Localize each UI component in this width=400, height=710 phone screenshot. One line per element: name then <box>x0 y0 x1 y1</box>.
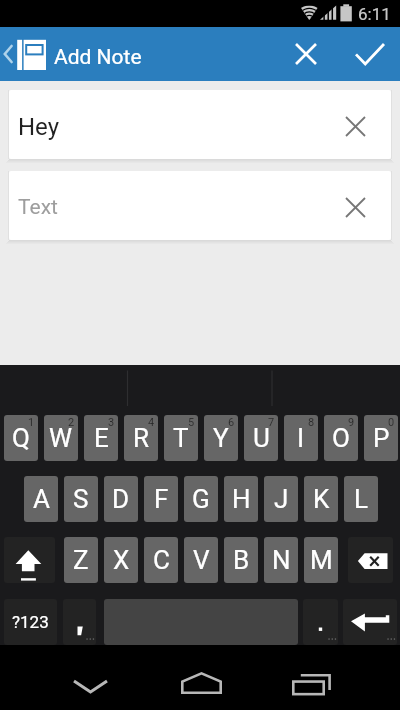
button[interactable]: Y <box>204 415 238 461</box>
button[interactable]: Comma <box>63 599 96 645</box>
button[interactable]: Hey <box>9 90 391 159</box>
staticText: 1 <box>28 416 35 429</box>
button[interactable]: O <box>324 415 358 461</box>
button[interactable]: S <box>64 476 98 522</box>
staticText: V <box>193 545 210 575</box>
staticText: U <box>253 423 270 453</box>
button[interactable]: N <box>264 537 298 583</box>
staticText: R <box>133 423 150 453</box>
staticText: 4 <box>148 416 155 429</box>
staticText: 5 <box>188 416 195 429</box>
staticText: 2 <box>68 416 75 429</box>
button[interactable]: K <box>304 476 338 522</box>
staticText: L <box>354 484 369 514</box>
button[interactable]: Text <box>9 171 391 240</box>
staticText: B <box>233 545 250 575</box>
button[interactable]: W <box>44 415 78 461</box>
button[interactable]: A <box>24 476 58 522</box>
button[interactable]: T <box>164 415 198 461</box>
staticText: T <box>173 423 189 453</box>
staticText: G <box>192 484 210 514</box>
staticText: H <box>232 484 251 514</box>
button[interactable]: Recent apps <box>266 645 400 710</box>
button[interactable]: Discard <box>282 27 330 81</box>
button[interactable]: Hide keyboard <box>0 645 133 710</box>
staticText: J <box>274 484 289 514</box>
button[interactable]: P <box>364 415 398 461</box>
button[interactable]: Clear text <box>328 92 383 159</box>
staticText: O <box>332 423 350 453</box>
button[interactable]: Home <box>133 645 266 710</box>
button[interactable]: G <box>184 476 218 522</box>
staticText: D <box>112 484 130 514</box>
button[interactable]: I <box>284 415 318 461</box>
staticText: Hey <box>18 113 60 141</box>
staticText: P <box>373 423 390 453</box>
staticText: 3 <box>108 416 115 429</box>
button[interactable]: Shift <box>4 537 55 583</box>
button[interactable]: X <box>104 537 138 583</box>
staticText: K <box>313 484 330 514</box>
staticText: 7 <box>268 416 275 429</box>
staticText: ?123 <box>12 612 49 632</box>
staticText: F <box>154 484 169 514</box>
staticText: N <box>272 545 291 575</box>
staticText: Q <box>12 423 30 453</box>
button[interactable]: ?123 <box>4 599 57 645</box>
button[interactable]: Q <box>4 415 38 461</box>
staticText: A <box>33 484 50 514</box>
staticText: E <box>94 423 109 453</box>
staticText: C <box>153 545 170 575</box>
button[interactable]: Backspace <box>348 537 393 583</box>
staticText: M <box>310 545 333 575</box>
staticText: W <box>49 423 73 453</box>
staticText: 9 <box>348 416 355 429</box>
button[interactable]: R <box>124 415 158 461</box>
staticText: Text <box>18 195 58 220</box>
button[interactable]: H <box>224 476 258 522</box>
button[interactable]: C <box>144 537 178 583</box>
button[interactable]: Z <box>64 537 98 583</box>
staticText: Z <box>73 545 89 575</box>
staticText: 0 <box>388 416 395 429</box>
button[interactable]: U <box>244 415 278 461</box>
button[interactable]: D <box>104 476 138 522</box>
button[interactable]: F <box>144 476 178 522</box>
staticText: 6 <box>228 416 235 429</box>
button[interactable]: Save <box>346 27 394 81</box>
button[interactable]: L <box>344 476 378 522</box>
button[interactable]: E <box>84 415 118 461</box>
staticText: I <box>297 423 305 453</box>
button[interactable]: V <box>184 537 218 583</box>
button[interactable]: Clear text <box>328 173 383 240</box>
staticText: Add Note <box>54 45 142 70</box>
button[interactable]: Period <box>303 599 338 645</box>
staticText: Y <box>213 423 229 453</box>
staticText: 8 <box>308 416 315 429</box>
button[interactable]: B <box>224 537 258 583</box>
button[interactable]: Enter <box>343 599 397 645</box>
staticText: X <box>113 545 130 575</box>
staticText: 6:11 <box>358 4 391 24</box>
button[interactable]: J <box>264 476 298 522</box>
button[interactable]: M <box>304 537 338 583</box>
button[interactable]: Navigate up <box>0 27 54 81</box>
staticText: S <box>73 484 89 514</box>
